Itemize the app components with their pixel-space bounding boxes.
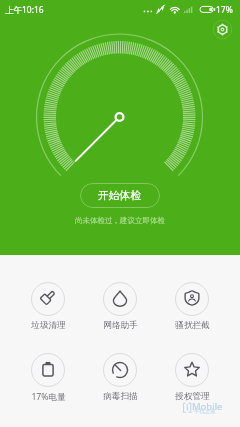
button[interactable]: Block harassment: [156, 282, 228, 331]
staticText: 开始体检: [98, 189, 142, 203]
staticText: 17%: [216, 4, 233, 16]
staticText: 骚扰拦截: [175, 320, 210, 331]
button[interactable]: Virus scan: [84, 353, 156, 402]
button[interactable]: Settings: [208, 15, 237, 44]
button[interactable]: Permissions: [156, 353, 228, 402]
staticText: 垃圾清理: [31, 320, 66, 331]
staticText: 网络助手: [103, 320, 138, 331]
staticText: 手机之家: [194, 408, 216, 415]
staticText: 17%电量: [31, 391, 66, 403]
staticText: 尚未体检过，建议立即体检: [75, 216, 165, 225]
button[interactable]: 开始体检: [80, 183, 160, 208]
staticText: 上午10:16: [5, 4, 44, 16]
staticText: Mobile: [192, 400, 223, 413]
button[interactable]: Battery: [12, 353, 84, 403]
button[interactable]: Network assistant: [84, 282, 156, 331]
button[interactable]: Junk cleanup: [12, 282, 84, 331]
staticText: 授权管理: [175, 391, 210, 402]
staticText: 病毒扫描: [103, 391, 138, 402]
